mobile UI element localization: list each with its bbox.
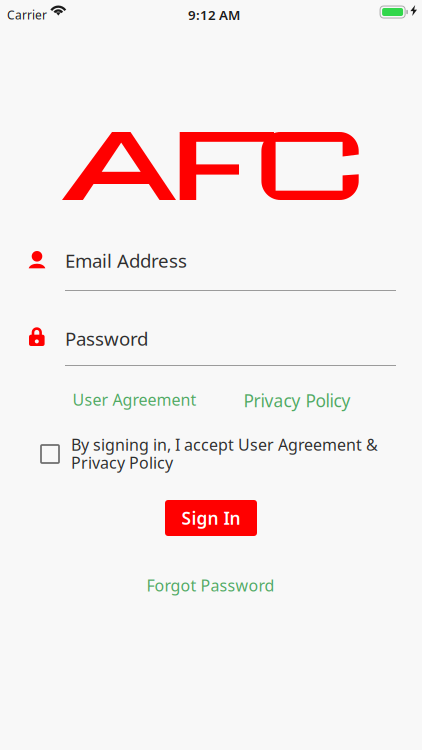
button[interactable]: Privacy Policy [243, 389, 350, 412]
staticText: Sign In [181, 506, 240, 529]
staticText: Email Address [65, 248, 187, 273]
staticText: 9:12 AM [188, 6, 240, 24]
staticText: User Agreement [73, 389, 197, 410]
button[interactable]: Accept User Agreement and Privacy Policy [41, 445, 59, 463]
staticText: Forgot Password [147, 575, 275, 596]
button[interactable]: Sign In [165, 500, 257, 536]
button[interactable]: Forgot Password [147, 575, 275, 596]
button[interactable]: User Agreement [73, 389, 197, 410]
staticText: Carrier [7, 7, 47, 23]
staticText: Password [65, 326, 148, 351]
staticText: Privacy Policy [243, 389, 350, 412]
staticText: By signing in, I accept User Agreement &… [71, 434, 378, 473]
